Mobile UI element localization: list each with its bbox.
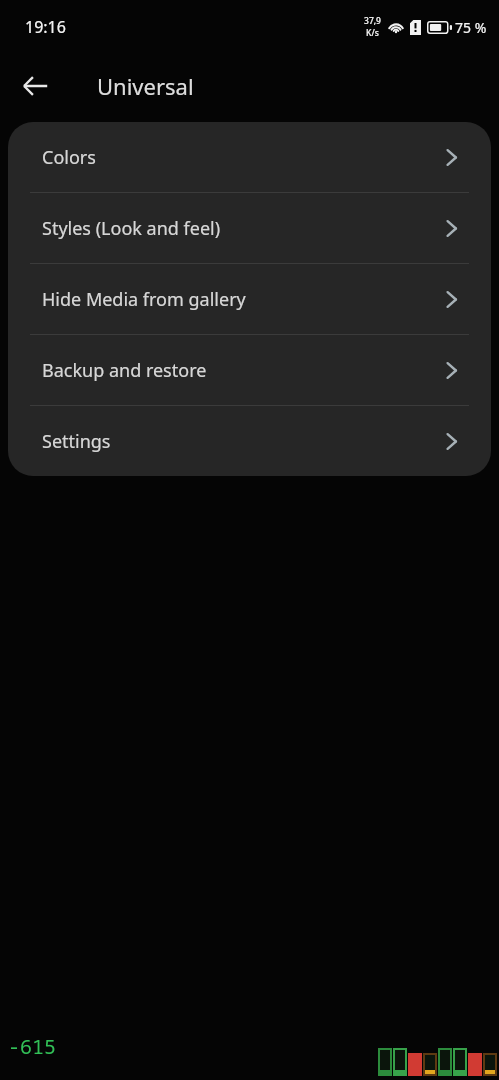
staticText: Universal bbox=[97, 71, 194, 101]
staticText: Backup and restore bbox=[42, 358, 445, 383]
button[interactable]: Settings bbox=[8, 406, 491, 476]
staticText: 37,9 bbox=[364, 15, 381, 27]
button[interactable]: Backup and restore bbox=[8, 335, 491, 405]
staticText: Hide Media from gallery bbox=[42, 287, 445, 312]
button[interactable]: Styles (Look and feel) bbox=[8, 193, 491, 263]
button[interactable]: Colors bbox=[8, 122, 491, 192]
staticText: 75 % bbox=[455, 18, 487, 37]
button[interactable]: Back bbox=[11, 62, 58, 109]
staticText: Settings bbox=[42, 429, 445, 454]
button[interactable]: Hide Media from gallery bbox=[8, 264, 491, 334]
staticText: Colors bbox=[42, 145, 445, 170]
staticText: 19:16 bbox=[25, 16, 66, 38]
staticText: Styles (Look and feel) bbox=[42, 216, 445, 241]
staticText: -615 bbox=[8, 1033, 56, 1060]
staticText: K/s bbox=[366, 27, 379, 39]
